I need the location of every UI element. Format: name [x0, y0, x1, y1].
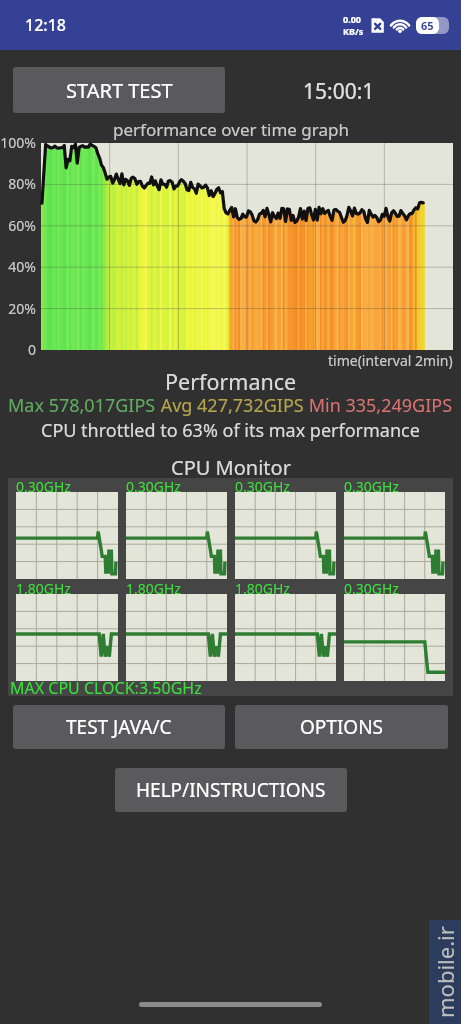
- staticText: TEST JAVA/C: [66, 714, 172, 740]
- other: SIM: [370, 18, 385, 33]
- staticText: KB/s: [343, 25, 364, 37]
- staticText: 20%: [8, 299, 36, 318]
- staticText: 0.00: [343, 13, 361, 25]
- staticText: 0: [27, 340, 36, 359]
- staticText: 65: [421, 18, 434, 33]
- staticText: MAX CPU CLOCK:3.50GHz: [10, 677, 202, 699]
- staticText: Performance: [165, 367, 297, 396]
- button[interactable]: OPTIONS: [235, 705, 448, 749]
- staticText: 40%: [8, 257, 36, 276]
- staticText: performance over time graph: [113, 118, 349, 141]
- staticText: 0.30GHz: [344, 477, 399, 496]
- button[interactable]: HELP/INSTRUCTIONS: [115, 768, 347, 812]
- staticText: time(interval 2min): [328, 351, 453, 370]
- staticText: CPU Monitor: [171, 454, 291, 478]
- staticText: CPU throttled to 63% of its max performa…: [41, 418, 420, 443]
- staticText: 60%: [8, 216, 36, 235]
- staticText: 15:00:1: [303, 77, 375, 106]
- staticText: Avg 427,732GIPS: [156, 393, 304, 418]
- button[interactable]: START TEST: [13, 67, 225, 113]
- button[interactable]: TEST JAVA/C: [13, 705, 225, 749]
- staticText: 1.80GHz: [235, 579, 290, 598]
- other: Wi-Fi: [391, 16, 409, 34]
- staticText: Min 335,249GIPS: [304, 393, 453, 418]
- staticText: 0.30GHz: [16, 477, 71, 496]
- staticText: 0.30GHz: [126, 477, 181, 496]
- staticText: START TEST: [66, 77, 173, 104]
- staticText: OPTIONS: [300, 714, 384, 740]
- staticText: 100%: [0, 133, 36, 152]
- staticText: Max 578,017GIPS: [8, 393, 156, 418]
- staticText: mobile.ir: [430, 926, 460, 1018]
- staticText: 0.30GHz: [344, 579, 399, 598]
- staticText: 0.30GHz: [235, 477, 290, 496]
- staticText: 1.80GHz: [16, 579, 71, 598]
- staticText: HELP/INSTRUCTIONS: [136, 777, 326, 803]
- staticText: 80%: [8, 174, 36, 193]
- staticText: 12:18: [25, 14, 66, 36]
- staticText: 1.80GHz: [126, 579, 181, 598]
